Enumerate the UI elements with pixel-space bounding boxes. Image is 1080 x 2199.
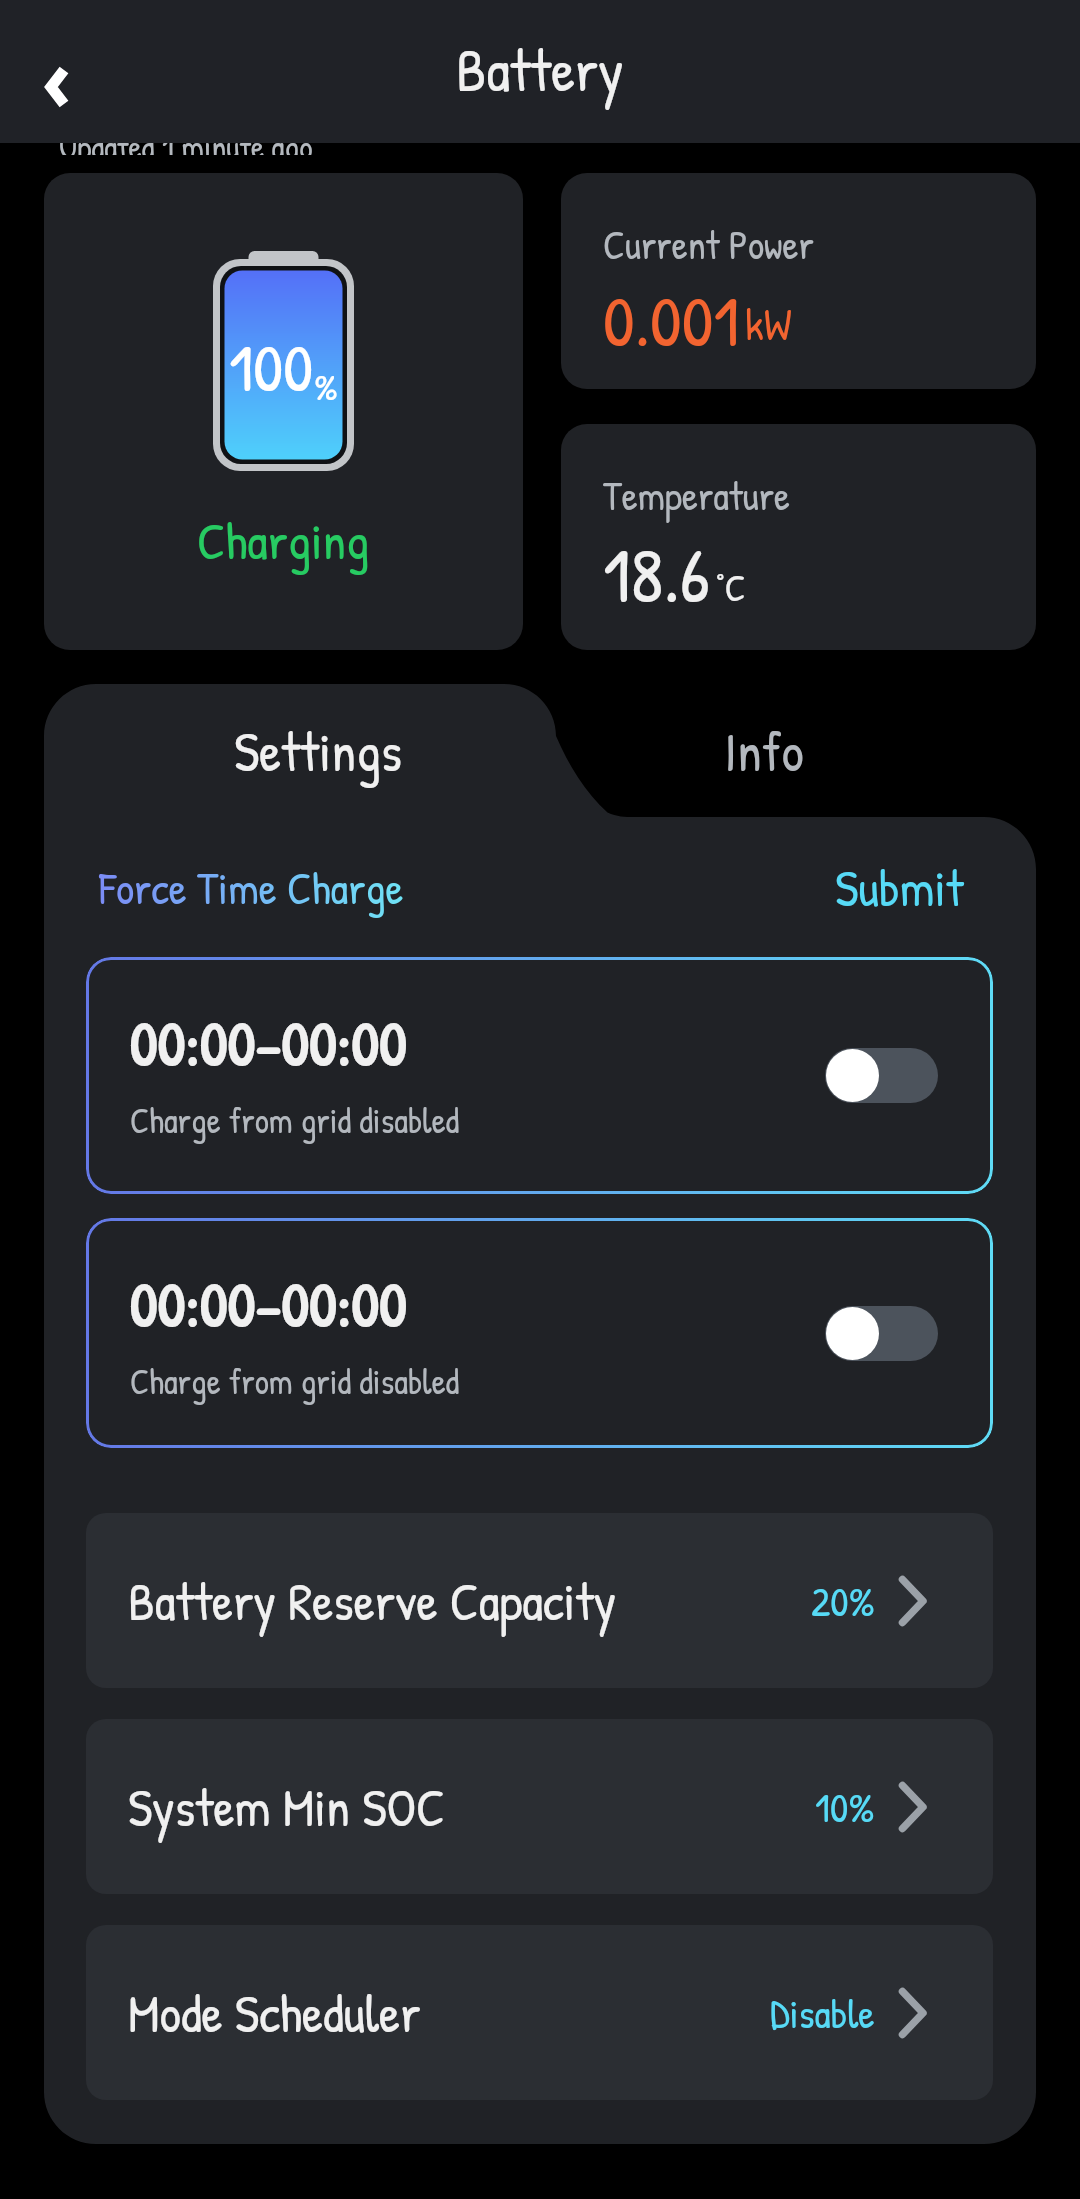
- button[interactable]: Toggle charge from grid: [825, 1048, 938, 1103]
- staticText: Charge from grid disabled: [130, 1097, 460, 1144]
- staticText: Charge from grid disabled: [130, 1358, 460, 1405]
- button[interactable]: Back: [0, 0, 115, 143]
- button[interactable]: System Min SOC: [86, 1719, 993, 1894]
- staticText: 10%: [815, 1779, 875, 1835]
- button[interactable]: Force Time Charge: [99, 857, 404, 918]
- staticText: 100: [229, 321, 314, 412]
- staticText: °C: [716, 561, 746, 612]
- staticText: Temperature: [603, 468, 791, 522]
- staticText: Charging: [197, 505, 370, 575]
- button[interactable]: Settings: [44, 684, 591, 817]
- button[interactable]: Battery Reserve Capacity: [86, 1513, 993, 1688]
- staticText: Updated 1 minute ago: [59, 125, 313, 155]
- button[interactable]: 100: [44, 173, 523, 650]
- staticText: %: [314, 361, 338, 411]
- staticText: Battery: [456, 28, 624, 109]
- staticText: Battery Reserve Capacity: [128, 1565, 617, 1637]
- button[interactable]: 00:00–00:00: [86, 1218, 993, 1448]
- button[interactable]: Temperature: [561, 424, 1036, 650]
- staticText: 0.001: [603, 272, 740, 368]
- button[interactable]: Info: [491, 684, 1036, 817]
- staticText: System Min SOC: [128, 1771, 446, 1843]
- staticText: 00:00–00:00: [130, 1000, 408, 1084]
- button[interactable]: Toggle charge from grid: [825, 1306, 938, 1361]
- button[interactable]: Current Power: [561, 173, 1036, 389]
- staticText: 18.6: [603, 523, 711, 626]
- staticText: Disable: [770, 1985, 875, 2041]
- staticText: Mode Scheduler: [128, 1977, 421, 2049]
- button[interactable]: 00:00–00:00: [86, 957, 993, 1194]
- staticText: kW: [745, 293, 792, 354]
- button[interactable]: Mode Scheduler: [86, 1925, 993, 2100]
- staticText: 20%: [811, 1573, 875, 1629]
- staticText: Info: [724, 714, 804, 788]
- staticText: 00:00–00:00: [130, 1261, 408, 1345]
- staticText: Current Power: [603, 217, 814, 271]
- staticText: Settings: [234, 714, 402, 788]
- button[interactable]: Submit: [835, 853, 964, 922]
